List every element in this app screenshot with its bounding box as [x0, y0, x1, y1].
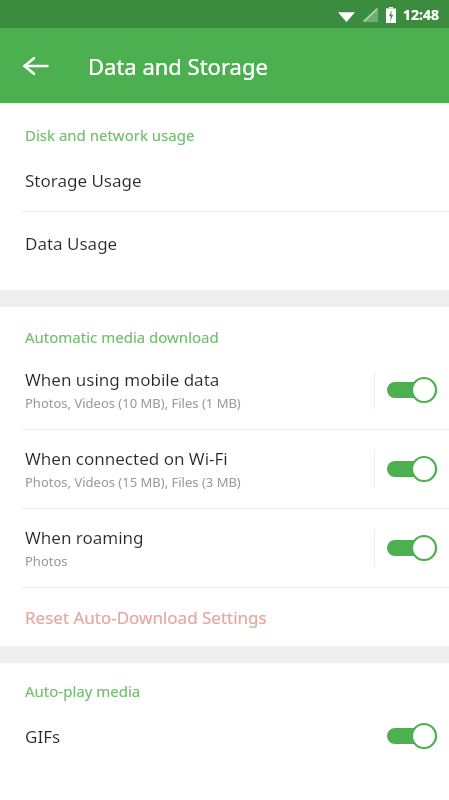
button[interactable]: When connected on Wi-Fi toggle	[375, 430, 449, 508]
staticText: Photos	[25, 552, 68, 570]
button[interactable]: GIFs	[0, 705, 449, 767]
button[interactable]: Storage Usage	[0, 149, 449, 211]
button[interactable]: When using mobile data toggle	[375, 351, 449, 429]
staticText: GIFs	[25, 725, 61, 748]
staticText: Automatic media download	[25, 327, 219, 347]
staticText: Storage Usage	[25, 169, 142, 192]
button[interactable]: GIFs toggle	[375, 705, 449, 767]
button[interactable]: When connected on Wi-Fi	[0, 430, 449, 508]
staticText: Photos, Videos (10 MB), Files (1 MB)	[25, 394, 241, 412]
staticText: Photos, Videos (15 MB), Files (3 MB)	[25, 473, 241, 491]
button[interactable]: When roaming toggle	[375, 509, 449, 587]
button[interactable]: When roaming	[0, 509, 449, 587]
staticText: When roaming	[25, 526, 144, 549]
staticText: When connected on Wi-Fi	[25, 447, 228, 470]
button[interactable]: Reset Auto-Download Settings	[0, 588, 449, 646]
staticText: Data Usage	[25, 232, 118, 255]
button[interactable]: When using mobile data	[0, 351, 449, 429]
staticText: 12:48	[403, 5, 439, 24]
staticText: Auto-play media	[25, 681, 141, 701]
button[interactable]: Data Usage	[0, 212, 449, 274]
staticText: Reset Auto-Download Settings	[25, 606, 267, 629]
staticText: Data and Storage	[88, 51, 268, 81]
button[interactable]: Back	[10, 40, 62, 92]
staticText: When using mobile data	[25, 368, 220, 391]
staticText: Disk and network usage	[25, 125, 195, 145]
